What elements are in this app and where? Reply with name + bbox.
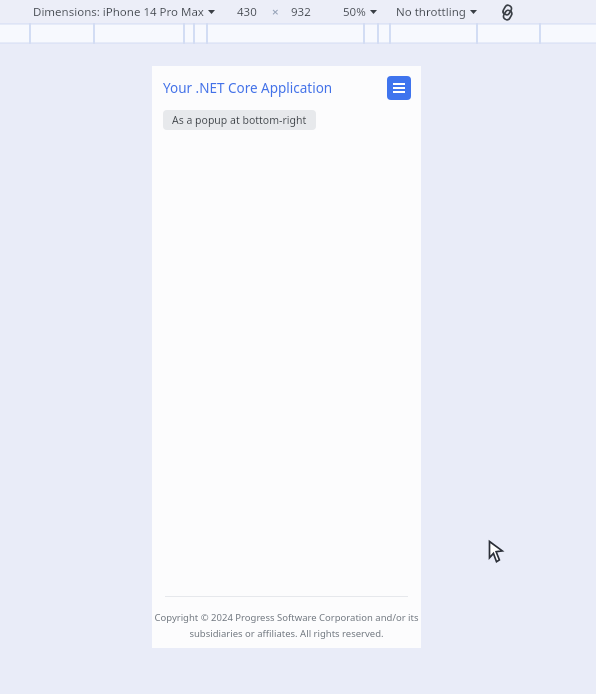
button[interactable]: As a popup at bottom-right — [163, 110, 316, 130]
button[interactable]: 932 — [291, 4, 311, 20]
button[interactable]: Rotate device — [497, 2, 517, 22]
staticText: As a popup at bottom-right — [172, 113, 307, 127]
staticText: Your .NET Core Application — [163, 79, 333, 97]
button[interactable]: 430 — [237, 4, 257, 20]
staticText: 932 — [291, 4, 311, 20]
staticText: 430 — [237, 4, 257, 20]
staticText: subsidiaries or affiliates. All rights r… — [189, 627, 384, 640]
button[interactable]: No throttling — [394, 4, 479, 20]
button[interactable]: 50% — [341, 4, 379, 20]
staticText: × — [272, 4, 279, 20]
staticText: Copyright © 2024 Progress Software Corpo… — [154, 611, 419, 624]
button[interactable]: Open navigation menu — [387, 76, 411, 100]
staticText: Dimensions: iPhone 14 Pro Max — [33, 4, 204, 20]
staticText: 50% — [343, 4, 366, 20]
button[interactable]: Your .NET Core Application — [163, 79, 333, 97]
button[interactable]: Dimensions: iPhone 14 Pro Max — [31, 4, 217, 20]
staticText: No throttling — [396, 4, 466, 20]
